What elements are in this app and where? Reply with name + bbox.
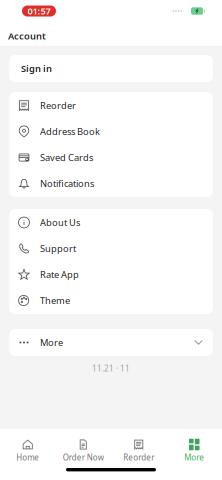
button[interactable]: Notifications [9, 170, 213, 196]
staticText: Home [16, 452, 39, 463]
staticText: Address Book [40, 125, 100, 138]
button[interactable]: Saved Cards [9, 144, 213, 170]
staticText: Reorder [40, 99, 76, 112]
button[interactable]: Home [0, 429, 55, 467]
button[interactable]: Address Book [9, 118, 213, 144]
staticText: Notifications [40, 177, 94, 190]
staticText: Reorder [123, 452, 154, 463]
button[interactable]: More [166, 429, 222, 467]
button[interactable]: Rate App [9, 261, 213, 287]
staticText: 01:57 [27, 5, 50, 17]
staticText: More [184, 452, 204, 463]
staticText: About Us [40, 216, 80, 229]
button[interactable]: Theme [9, 287, 213, 313]
button[interactable]: Reorder [9, 92, 213, 118]
staticText: Account [8, 30, 46, 42]
button[interactable]: Reorder [111, 429, 166, 467]
staticText: Rate App [40, 268, 79, 281]
staticText: Theme [40, 294, 70, 307]
button[interactable]: About Us [9, 209, 213, 235]
button[interactable]: More [9, 329, 213, 356]
staticText: Sign in [21, 62, 52, 75]
staticText: Saved Cards [40, 151, 93, 164]
button[interactable]: Order Now [55, 429, 111, 467]
staticText: More [40, 336, 63, 349]
button[interactable]: Support [9, 235, 213, 261]
button[interactable]: Sign in [9, 55, 213, 82]
staticText: Support [40, 242, 76, 255]
staticText: 11.21 · 11 [92, 363, 130, 374]
staticText: Order Now [63, 452, 104, 463]
